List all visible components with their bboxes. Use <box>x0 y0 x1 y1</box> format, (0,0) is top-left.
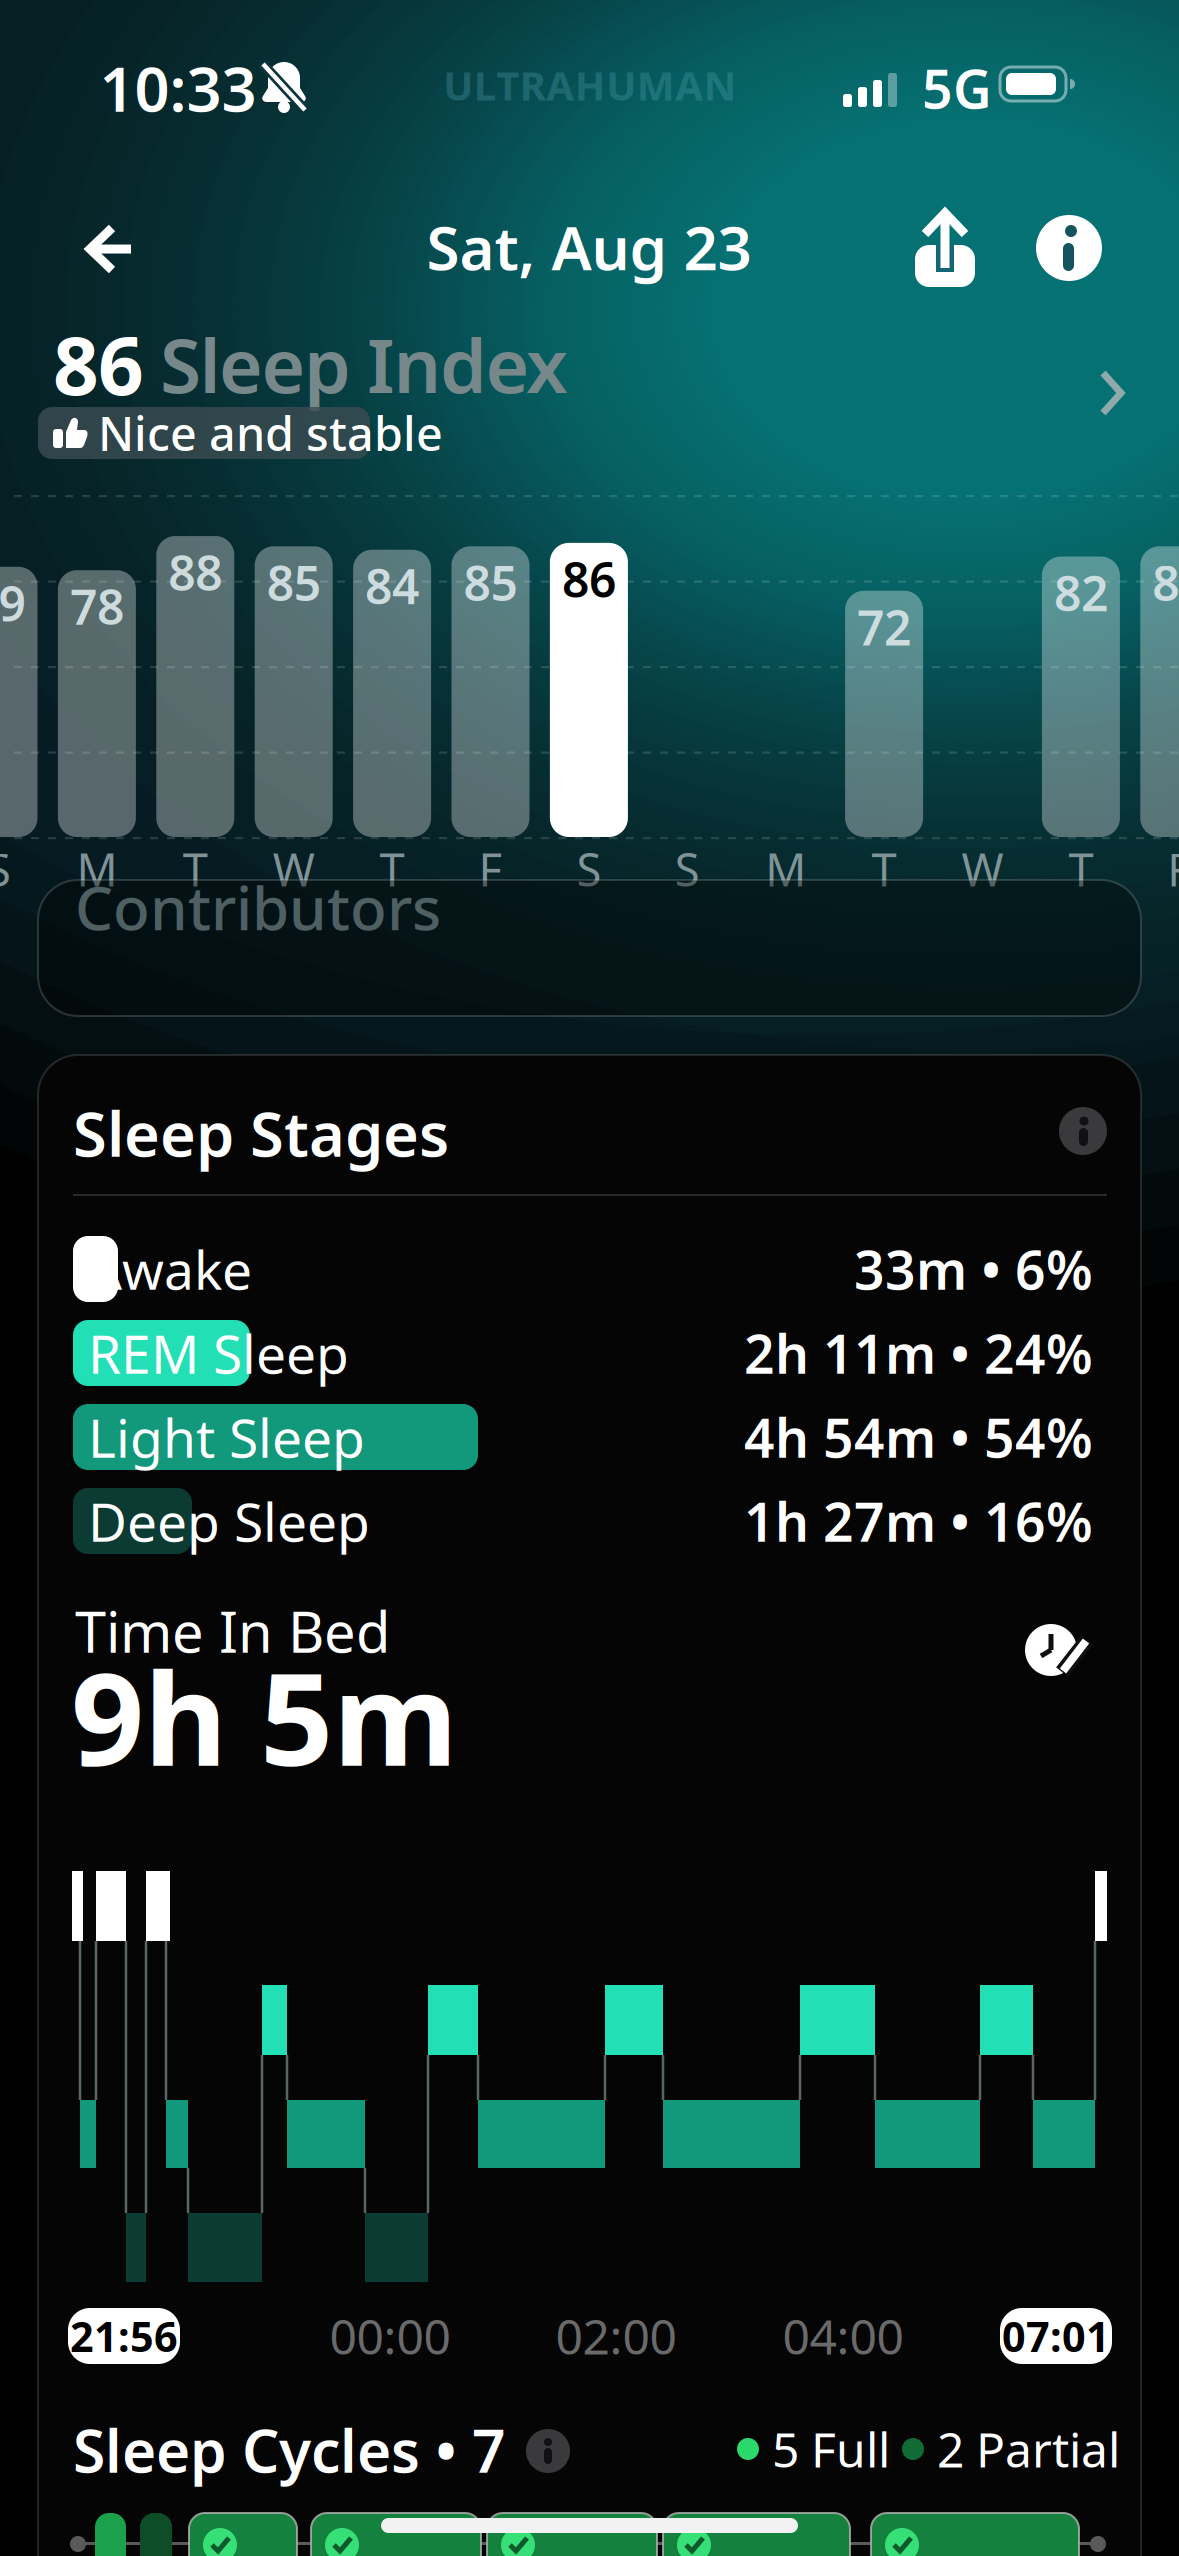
staticText: Awake <box>88 1234 252 1304</box>
staticText: Contributors <box>75 867 441 947</box>
staticText: Deep Sleep <box>88 1486 370 1556</box>
staticText: 88 <box>168 540 222 604</box>
staticText: 2h 11m • 24% <box>744 1318 1093 1388</box>
staticText: 2 Partial <box>937 2417 1120 2481</box>
staticText: 72 <box>857 595 911 659</box>
staticText: T <box>872 839 897 899</box>
staticText: 1h 27m • 16% <box>744 1486 1093 1556</box>
staticText: 79 <box>0 571 25 635</box>
staticText: Nice and stable <box>98 402 443 464</box>
staticText: Light Sleep <box>88 1402 365 1472</box>
staticText: 85 <box>1152 550 1179 614</box>
staticText: S <box>576 839 601 899</box>
staticText: F <box>1167 839 1179 899</box>
staticText: 33m • 6% <box>854 1234 1093 1304</box>
staticText: ULTRAHUMAN <box>443 58 737 111</box>
staticText: W <box>273 839 315 899</box>
staticText: S <box>0 839 11 899</box>
staticText: 04:00 <box>782 2304 903 2368</box>
staticText: 86 <box>53 311 144 417</box>
staticText: 07:01 <box>1002 2309 1110 2363</box>
staticText: Sleep Index <box>160 314 568 414</box>
staticText: F <box>478 839 502 899</box>
staticText: 84 <box>365 554 419 617</box>
staticText: 4h 54m • 54% <box>744 1402 1093 1472</box>
staticText: M <box>765 839 806 899</box>
staticText: 02:00 <box>555 2304 676 2368</box>
staticText: Sleep Stages <box>73 1092 449 1174</box>
staticText: 9h 5m <box>71 1631 458 1801</box>
staticText: 5G <box>922 53 992 123</box>
staticText: REM Sleep <box>88 1318 349 1388</box>
staticText: 82 <box>1054 561 1108 624</box>
staticText: 78 <box>70 574 124 638</box>
staticText: 10:33 <box>99 47 256 129</box>
staticText: 5 Full <box>772 2417 890 2481</box>
staticText: 85 <box>267 550 321 614</box>
staticText: Sat, Aug 23 <box>426 207 751 287</box>
staticText: T <box>380 839 405 899</box>
staticText: T <box>1068 839 1093 899</box>
staticText: 85 <box>463 550 517 614</box>
staticText: W <box>961 839 1003 899</box>
staticText: S <box>675 839 700 899</box>
staticText: T <box>183 839 208 899</box>
staticText: 21:56 <box>70 2309 178 2363</box>
staticText: M <box>76 839 117 899</box>
staticText: Time In Bed <box>75 1594 390 1668</box>
staticText: 00:00 <box>329 2304 450 2368</box>
staticText: Sleep Cycles • 7 <box>73 2411 506 2489</box>
staticText: 86 <box>562 547 616 611</box>
